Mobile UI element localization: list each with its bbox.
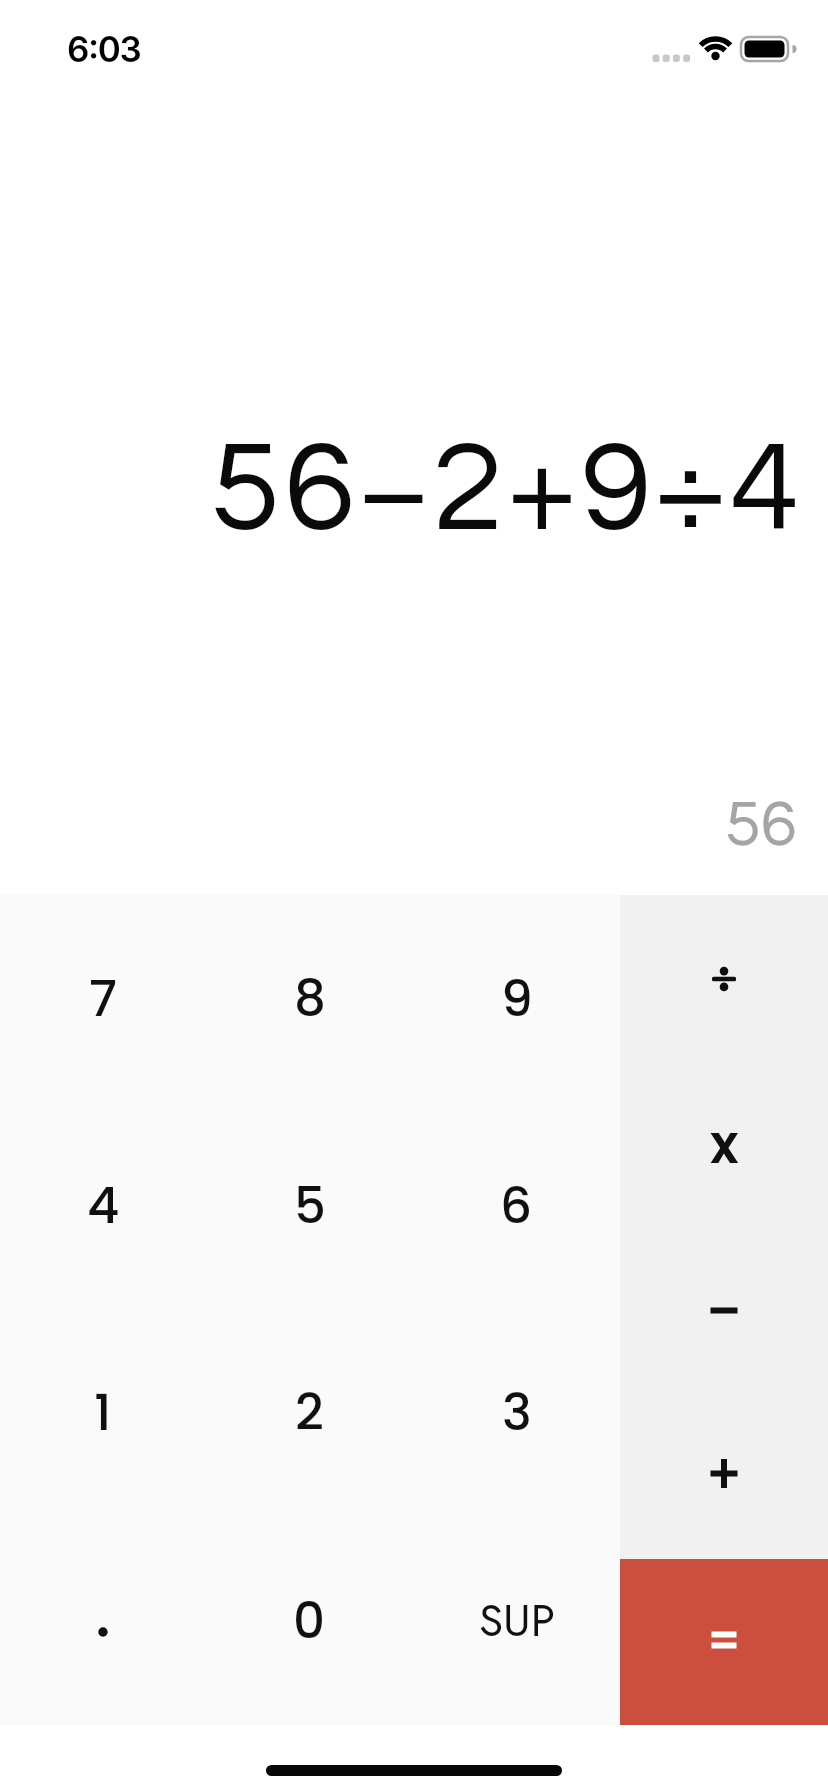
button[interactable]: 9: [413, 895, 620, 1102]
staticText: SUP: [479, 1589, 555, 1653]
staticText: 3: [502, 1378, 532, 1448]
staticText: 5: [294, 1171, 326, 1241]
staticText: 9: [501, 964, 533, 1034]
button[interactable]: 5: [206, 1102, 413, 1309]
button[interactable]: [620, 1559, 828, 1725]
staticText: 8: [294, 964, 326, 1034]
staticText: 6: [500, 1171, 533, 1241]
staticText: 56−2+9÷4: [210, 424, 804, 556]
button[interactable]: SUP: [413, 1517, 620, 1725]
button[interactable]: 0: [206, 1517, 413, 1725]
button[interactable]: 4: [0, 1102, 206, 1309]
button[interactable]: 1: [0, 1309, 206, 1517]
button[interactable]: [620, 1227, 828, 1393]
button[interactable]: [620, 895, 828, 1061]
staticText: 7: [89, 964, 117, 1034]
staticText: 0: [293, 1586, 326, 1656]
staticText: 4: [87, 1171, 120, 1241]
button[interactable]: [0, 1517, 206, 1725]
staticText: 2: [295, 1378, 324, 1448]
button[interactable]: 8: [206, 895, 413, 1102]
staticText: x: [710, 1107, 739, 1181]
button[interactable]: 2: [206, 1309, 413, 1517]
staticText: 1: [94, 1378, 112, 1448]
button[interactable]: [620, 1393, 828, 1559]
button[interactable]: x: [620, 1061, 828, 1227]
staticText: 6:03: [67, 28, 141, 70]
button[interactable]: 7: [0, 895, 206, 1102]
button[interactable]: 3: [413, 1309, 620, 1517]
button[interactable]: 6: [413, 1102, 620, 1309]
staticText: 56: [725, 792, 797, 859]
